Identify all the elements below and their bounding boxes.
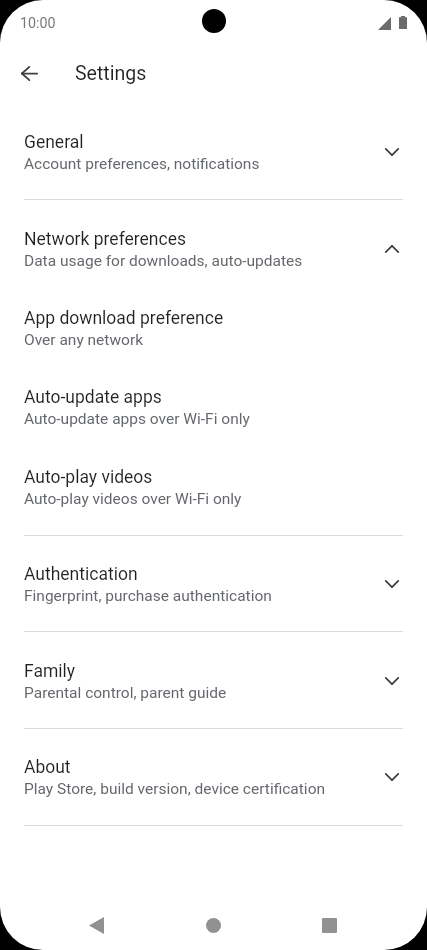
staticText: Over any network [24,331,144,349]
staticText: General [24,132,84,153]
staticText: Auto-update apps [24,387,162,408]
staticText: App download preference [24,308,224,329]
staticText: Parental control, parent guide [24,684,227,702]
button[interactable]: Auto-play videos [0,467,427,508]
staticText: Settings [75,62,147,85]
staticText: 10:00 [20,15,56,32]
staticText: About [24,757,71,778]
staticText: Auto-play videos over Wi-Fi only [24,490,242,508]
button[interactable]: Back [72,901,120,949]
staticText: Auto-play videos [24,467,153,488]
staticText: Fingerprint, purchase authentication [24,587,272,605]
staticText: Network preferences [24,229,186,250]
button[interactable]: Auto-update apps [0,387,427,428]
staticText: Data usage for downloads, auto-updates [24,252,303,270]
button[interactable]: App download preference [0,308,427,349]
button[interactable]: Authentication [0,564,427,605]
button[interactable]: Family [0,661,427,702]
staticText: Family [24,661,76,682]
button[interactable]: General [0,132,427,173]
staticText: Auto-update apps over Wi-Fi only [24,410,250,428]
button[interactable]: Back [9,53,49,93]
staticText: Account preferences, notifications [24,155,260,173]
button[interactable]: Recent apps [305,901,353,949]
button[interactable]: Network preferences [0,229,427,270]
button[interactable]: About [0,757,427,798]
staticText: Play Store, build version, device certif… [24,780,326,798]
staticText: Authentication [24,564,138,585]
button[interactable]: Home [189,901,237,949]
